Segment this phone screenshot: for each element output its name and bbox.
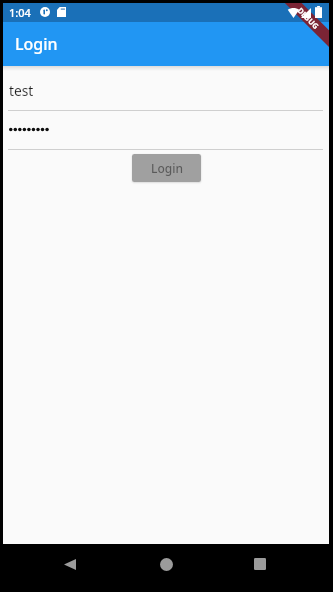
button[interactable]: Login: [132, 154, 201, 182]
staticText: test: [9, 81, 34, 100]
staticText: Login: [15, 33, 58, 55]
staticText: DEBUG: [295, 5, 322, 32]
button[interactable]: Back: [52, 546, 88, 582]
button[interactable]: Home: [148, 546, 184, 582]
button[interactable]: Recents: [242, 546, 278, 582]
staticText: Login: [151, 160, 183, 176]
button[interactable]: [3, 66, 329, 150]
button[interactable]: test: [3, 66, 329, 111]
staticText: 1:04: [9, 5, 31, 20]
